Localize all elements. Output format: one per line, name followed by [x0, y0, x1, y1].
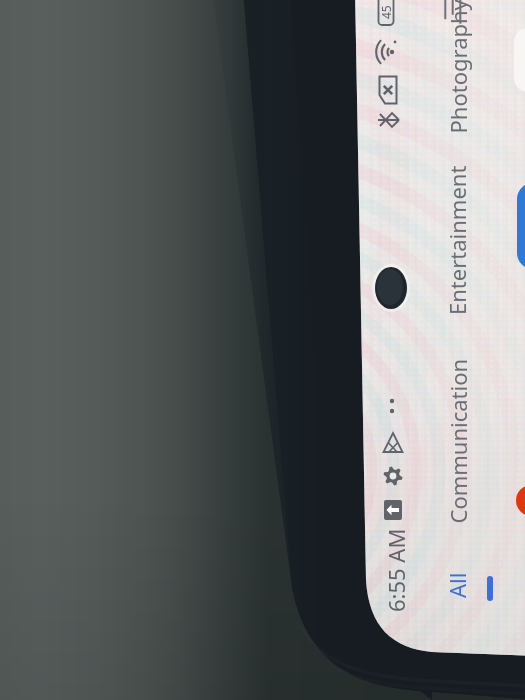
staticText: Photography [442, 0, 472, 133]
staticText: 6:55 AM [381, 528, 411, 612]
staticText: 45 [378, 5, 394, 19]
button[interactable]: Communication [297, 281, 525, 601]
button[interactable]: Menu [438, 0, 468, 30]
button[interactable] [514, 28, 525, 92]
button[interactable] [516, 485, 525, 516]
button[interactable]: All [297, 425, 525, 700]
button[interactable]: Photography [297, 0, 525, 226]
button[interactable] [487, 576, 493, 601]
button[interactable]: Entertainment [297, 80, 525, 400]
staticText: Entertainment [442, 165, 472, 315]
staticText: All [442, 572, 472, 598]
button[interactable] [517, 183, 525, 269]
staticText: Communication [442, 358, 472, 523]
